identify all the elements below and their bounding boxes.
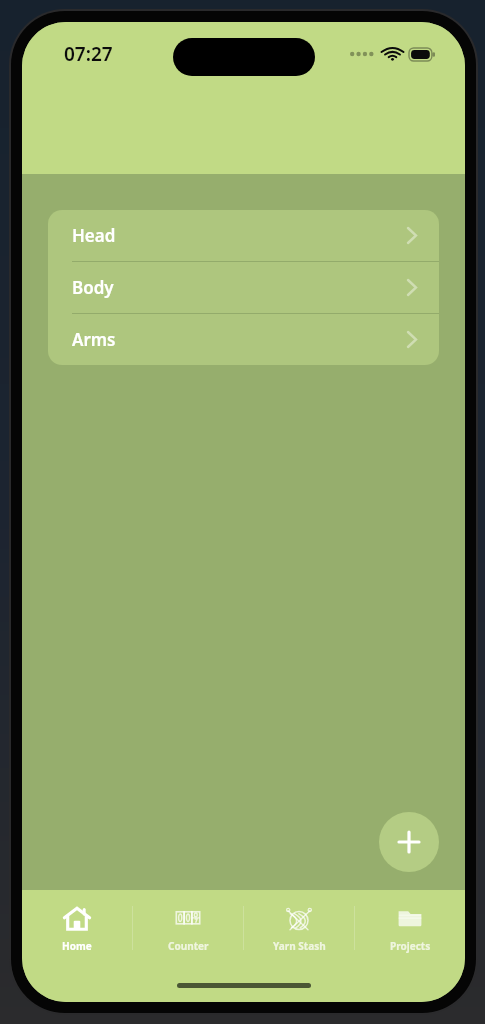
staticText: 07:27 bbox=[64, 41, 113, 67]
button[interactable]: Head bbox=[48, 210, 439, 262]
button[interactable]: Body bbox=[48, 262, 439, 314]
staticText: Yarn Stash bbox=[273, 939, 326, 953]
staticText: Counter bbox=[168, 939, 209, 953]
button[interactable]: Yarn Stash bbox=[244, 890, 354, 966]
staticText: Projects bbox=[390, 939, 431, 953]
staticText: Head bbox=[72, 224, 116, 247]
staticText: Home bbox=[62, 939, 92, 953]
staticText: Arms bbox=[72, 328, 116, 351]
button[interactable]: Home bbox=[22, 890, 132, 966]
button[interactable]: Projects bbox=[355, 890, 465, 966]
button[interactable]: Add section bbox=[379, 812, 439, 872]
button[interactable]: Arms bbox=[48, 314, 439, 365]
staticText: Body bbox=[72, 276, 114, 299]
button[interactable]: Counter bbox=[133, 890, 243, 966]
